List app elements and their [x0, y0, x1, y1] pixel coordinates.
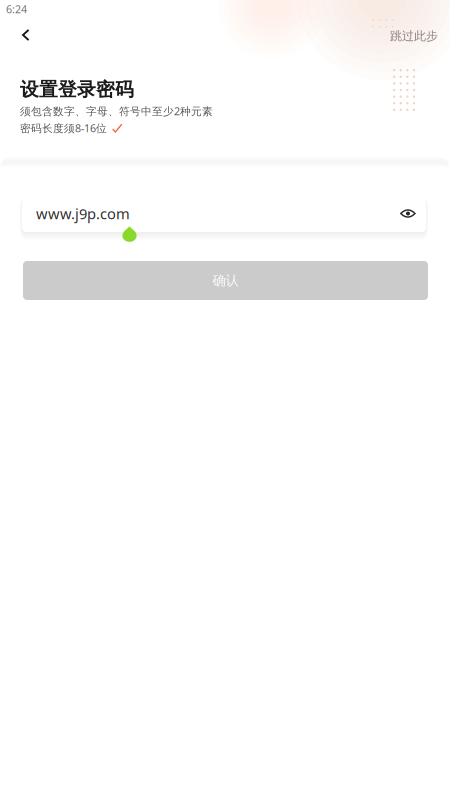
button[interactable]: Show password	[395, 200, 421, 226]
staticText: 跳过此步	[390, 29, 438, 43]
button[interactable]: 确认	[23, 261, 428, 300]
staticText: 密码长度须8-16位	[20, 121, 107, 135]
staticText: 6:24	[6, 2, 27, 16]
staticText: 设置登录密码	[20, 78, 134, 101]
staticText: 须包含数字、字母、符号中至少2种元素	[20, 104, 213, 118]
staticText: www.j9p.com	[36, 204, 130, 223]
button[interactable]: Back	[10, 23, 42, 47]
staticText: 确认	[212, 272, 238, 289]
button[interactable]: 跳过此步	[376, 28, 438, 44]
